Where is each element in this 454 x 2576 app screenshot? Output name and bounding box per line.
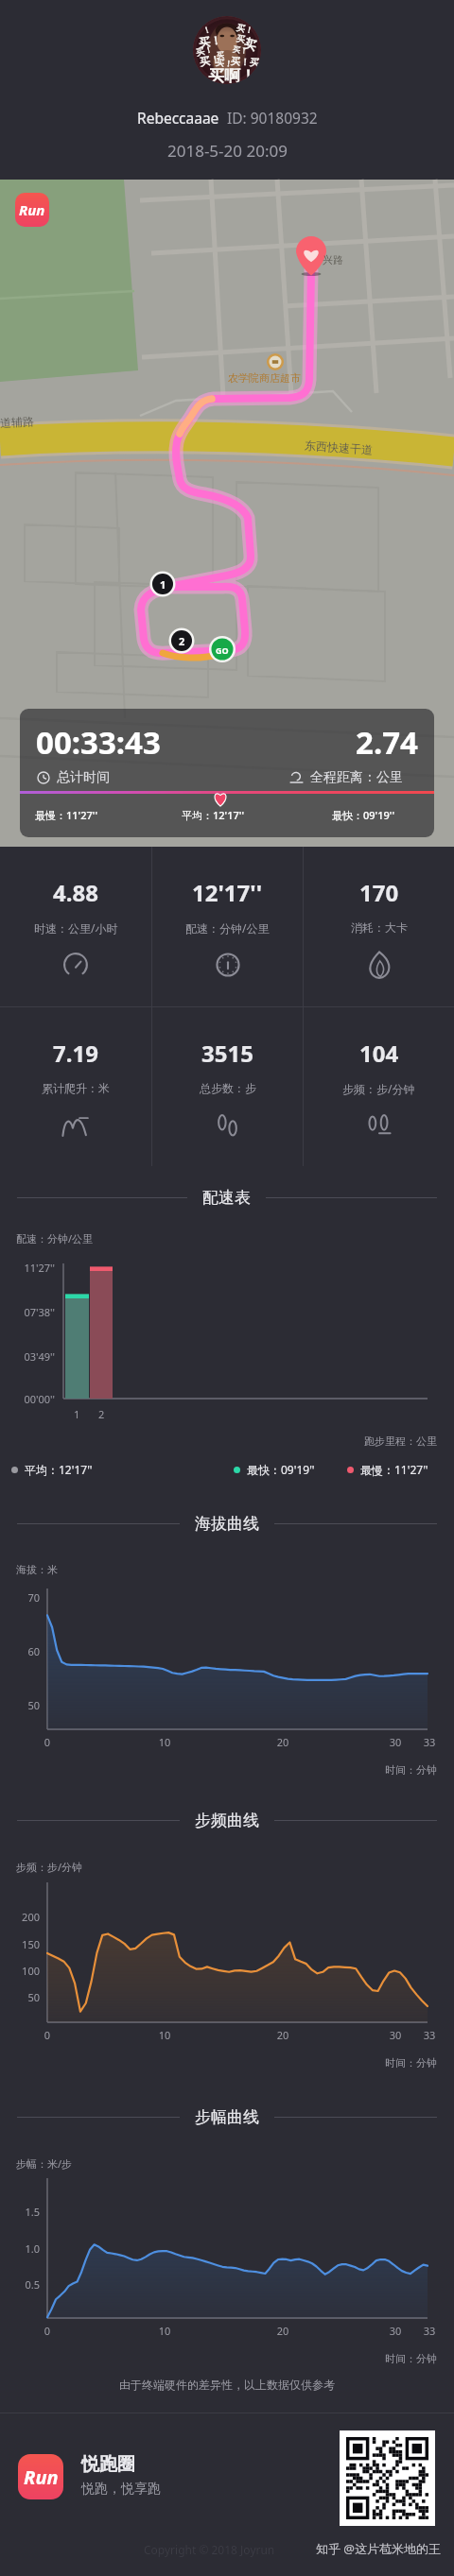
- staticText: 最慢：11'27'': [360, 1462, 428, 1477]
- staticText: 0: [34, 2028, 61, 2042]
- staticText: 30: [382, 1735, 409, 1749]
- staticText: 平均：12'17'': [182, 808, 244, 822]
- button[interactable]: 12'17'': [152, 847, 303, 1006]
- staticText: 步频曲线: [195, 1811, 259, 1830]
- staticText: 150: [6, 1937, 40, 1951]
- button[interactable]: Joyrun logo: [15, 193, 49, 227]
- button[interactable]: 170: [304, 847, 454, 1006]
- button[interactable]: 104: [304, 1007, 454, 1166]
- staticText: 累计爬升：米: [42, 1081, 110, 1095]
- staticText: 步幅：米/步: [16, 2156, 73, 2171]
- staticText: 消耗：大卡: [351, 920, 408, 935]
- staticText: 悦跑，悦享跑: [81, 2481, 161, 2498]
- staticText: 170: [359, 877, 399, 908]
- staticText: 悦跑圈: [81, 2453, 135, 2476]
- staticText: 1.0: [6, 2241, 40, 2256]
- button[interactable]: Joyrun app icon: [18, 2454, 63, 2499]
- button[interactable]: 3515: [152, 1007, 303, 1166]
- staticText: 配速：分钟/公里: [185, 920, 270, 936]
- staticText: 步幅曲线: [195, 2107, 259, 2127]
- staticText: Rebeccaaae: [137, 108, 219, 128]
- staticText: 时速：公里/小时: [34, 920, 118, 936]
- staticText: 买！: [236, 22, 254, 36]
- staticText: 买！: [199, 52, 221, 69]
- staticText: 1: [160, 577, 166, 592]
- staticText: 60: [6, 1644, 40, 1658]
- button[interactable]: Profile avatar: [193, 16, 261, 84]
- staticText: 买！: [215, 57, 233, 69]
- staticText: 50: [6, 1990, 40, 2004]
- staticText: 配速：分钟/公里: [16, 1231, 94, 1245]
- staticText: 20: [270, 2028, 296, 2042]
- staticText: 步频：步/分钟: [16, 1860, 83, 1874]
- staticText: 配速表: [202, 1188, 251, 1208]
- staticText: 70: [6, 1590, 40, 1605]
- staticText: 3515: [201, 1038, 253, 1069]
- staticText: 30: [382, 2028, 409, 2042]
- staticText: 东西快速干道: [304, 438, 373, 457]
- staticText: 1: [74, 1407, 80, 1421]
- staticText: 全程距离：公里: [310, 769, 403, 786]
- staticText: 33: [416, 2028, 443, 2042]
- staticText: 00'00'': [6, 1392, 55, 1406]
- staticText: 2.74: [20, 721, 418, 764]
- staticText: 买！买: [230, 55, 260, 69]
- staticText: 买啊！: [208, 66, 256, 84]
- staticText: 7.19: [53, 1038, 98, 1069]
- staticText: GO: [216, 644, 229, 656]
- staticText: 33: [416, 1735, 443, 1749]
- staticText: 00:33:43: [36, 721, 161, 764]
- staticText: 平均：12'17'': [25, 1462, 93, 1477]
- staticText: 0.5: [6, 2277, 40, 2292]
- staticText: 由于终端硬件的差异性，以上数据仅供参考: [0, 2378, 454, 2392]
- staticText: 时间：分钟: [0, 2056, 437, 2069]
- staticText: 买: [216, 50, 225, 60]
- staticText: 100: [6, 1964, 40, 1978]
- staticText: 12'17'': [192, 877, 263, 908]
- staticText: 2: [179, 634, 185, 648]
- staticText: 总步数：步: [200, 1081, 256, 1095]
- staticText: 104: [359, 1038, 399, 1069]
- staticText: 步频：步/分钟: [342, 1081, 415, 1096]
- staticText: 买！: [232, 44, 248, 56]
- staticText: 最快：09'19'': [332, 808, 394, 822]
- staticText: 买: [242, 36, 258, 53]
- staticText: 知乎 @这片苞米地的王: [0, 2540, 441, 2557]
- staticText: 07'38'': [6, 1305, 55, 1319]
- staticText: 总计时间: [57, 769, 110, 786]
- staticText: 时间：分钟: [0, 1763, 437, 1777]
- staticText: 200: [6, 1910, 40, 1924]
- staticText: 海拔曲线: [195, 1514, 259, 1534]
- staticText: 时间：分钟: [0, 2352, 437, 2365]
- staticText: 1.5: [6, 2205, 40, 2219]
- staticText: 道辅路: [0, 414, 34, 430]
- button[interactable]: 4.88: [0, 847, 151, 1006]
- staticText: 买！: [198, 33, 222, 50]
- staticText: 最快：09'19'': [247, 1462, 315, 1477]
- staticText: 50: [6, 1698, 40, 1712]
- staticText: 农学院商店超市: [228, 371, 301, 385]
- staticText: ID: 90180932: [227, 108, 318, 128]
- staticText: 跑步里程：公里: [0, 1434, 437, 1448]
- staticText: 11'27'': [6, 1261, 55, 1275]
- staticText: 买！: [195, 43, 214, 58]
- staticText: 10: [151, 1735, 178, 1749]
- staticText: Run: [19, 200, 45, 219]
- staticText: 4.88: [53, 877, 98, 908]
- staticText: 0: [34, 1735, 61, 1749]
- staticText: Copyright © 2018 Joyrun: [144, 2542, 275, 2557]
- staticText: 10: [151, 2028, 178, 2042]
- staticText: 兴路: [323, 253, 343, 266]
- staticText: 0: [34, 2324, 61, 2338]
- staticText: 20: [270, 2324, 296, 2338]
- staticText: 海拔：米: [16, 1563, 58, 1576]
- staticText: 03'49'': [6, 1349, 55, 1364]
- staticText: 2: [98, 1407, 105, 1421]
- staticText: 最慢：11'27'': [35, 808, 97, 822]
- staticText: 2018-5-20 20:09: [167, 140, 288, 162]
- staticText: 10: [151, 2324, 178, 2338]
- staticText: Run: [24, 2464, 59, 2490]
- button[interactable]: 7.19: [0, 1007, 151, 1166]
- staticText: 30: [382, 2324, 409, 2338]
- staticText: ！: [201, 24, 212, 36]
